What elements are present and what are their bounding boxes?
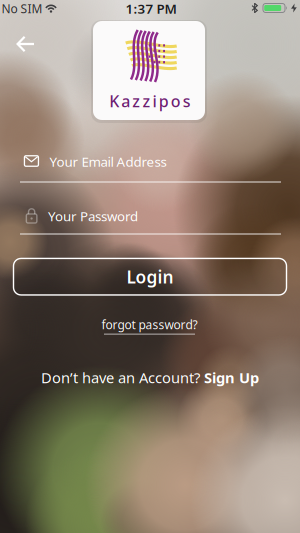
staticText: forgot password? [101, 316, 197, 332]
button[interactable]: Your Password [0, 203, 300, 243]
staticText: Kazzipos [109, 90, 191, 112]
staticText: Login [126, 265, 173, 288]
staticText: No SIM [1, 0, 42, 16]
staticText: Don’t have an Account? [41, 368, 204, 387]
staticText: Sign Up [204, 368, 259, 387]
button[interactable]: Back [7, 26, 45, 62]
button[interactable]: Sign Up [204, 368, 259, 387]
button[interactable]: Login [13, 258, 287, 295]
staticText: 1:37 PM [125, 0, 176, 17]
staticText: Your Email Address [49, 153, 166, 170]
staticText: Your Password [48, 207, 138, 225]
button[interactable]: Your Email Address [0, 151, 300, 191]
button[interactable]: forgot password? [104, 318, 195, 335]
